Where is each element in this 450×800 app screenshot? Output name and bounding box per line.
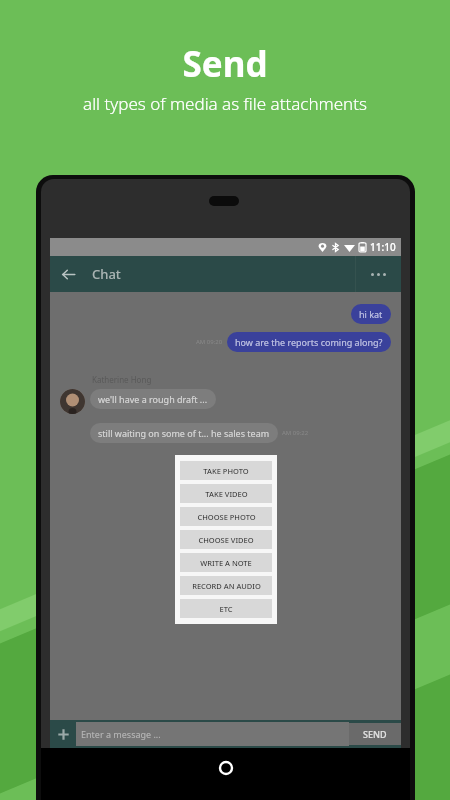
staticText: still waiting on some of t... he sales t…: [98, 427, 270, 439]
button[interactable]: Enter a message ...: [76, 722, 349, 746]
staticText: hi kat: [359, 308, 383, 320]
staticText: Katherine Hong: [92, 374, 152, 385]
button[interactable]: RECORD AN AUDIO: [180, 576, 272, 595]
button[interactable]: WRITE A NOTE: [180, 553, 272, 572]
button[interactable]: TAKE VIDEO: [180, 484, 272, 503]
staticText: Send: [182, 40, 268, 88]
staticText: ETC: [219, 604, 233, 614]
button[interactable]: SEND: [349, 723, 401, 745]
staticText: RECORD AN AUDIO: [192, 581, 261, 591]
staticText: AM 09:22: [282, 429, 309, 437]
staticText: SEND: [363, 728, 387, 740]
staticText: TAKE VIDEO: [205, 489, 248, 499]
staticText: TAKE PHOTO: [203, 466, 249, 476]
staticText: Chat: [92, 265, 121, 283]
button[interactable]: ETC: [180, 599, 272, 618]
button[interactable]: how are the reports coming along?: [227, 332, 391, 352]
staticText: how are the reports coming along?: [235, 336, 383, 348]
button[interactable]: CHOOSE PHOTO: [180, 507, 272, 526]
staticText: Enter a message ...: [81, 728, 161, 740]
staticText: WRITE A NOTE: [200, 558, 252, 568]
button[interactable]: More options: [356, 256, 401, 292]
button[interactable]: we'll have a rough draft ...: [90, 389, 216, 409]
staticText: all types of media as file attachments: [83, 92, 367, 115]
button[interactable]: Back: [50, 256, 86, 292]
button[interactable]: TAKE PHOTO: [180, 461, 272, 480]
button[interactable]: hi kat: [351, 304, 391, 324]
staticText: AM 09:20: [196, 338, 223, 346]
button[interactable]: CHOOSE VIDEO: [180, 530, 272, 549]
staticText: CHOOSE VIDEO: [198, 535, 254, 545]
button[interactable]: Home: [214, 756, 238, 780]
staticText: 11:10: [370, 240, 396, 254]
staticText: we'll have a rough draft ...: [98, 393, 208, 405]
staticText: CHOOSE PHOTO: [197, 512, 256, 522]
button[interactable]: Add attachment: [50, 720, 76, 748]
button[interactable]: still waiting on some of t... he sales t…: [90, 423, 278, 443]
